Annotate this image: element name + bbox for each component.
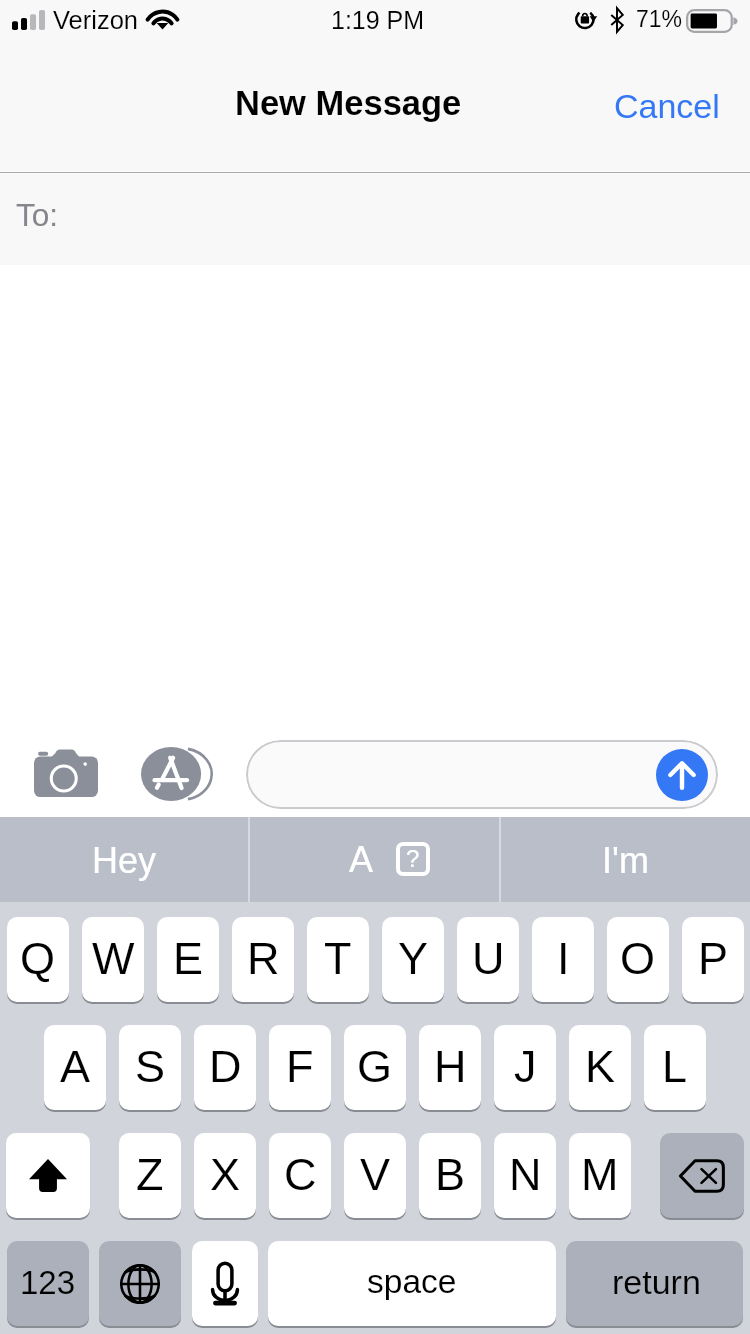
staticText: U xyxy=(472,933,505,983)
staticText: T xyxy=(324,933,352,983)
staticText: New Message xyxy=(235,84,462,123)
button[interactable]: X xyxy=(194,1133,256,1218)
button[interactable]: D xyxy=(194,1025,256,1110)
button[interactable]: Take photo xyxy=(28,742,104,804)
button[interactable]: return xyxy=(566,1241,743,1326)
button[interactable]: K xyxy=(569,1025,631,1110)
button[interactable]: R xyxy=(232,917,294,1002)
staticText: W xyxy=(92,933,135,983)
staticText: P xyxy=(698,933,729,983)
staticText: 1:19 PM xyxy=(331,6,425,34)
staticText: Hey xyxy=(92,840,157,880)
button[interactable]: Q xyxy=(7,917,69,1002)
staticText: return xyxy=(612,1263,701,1301)
staticText: H xyxy=(434,1041,467,1091)
button[interactable]: F xyxy=(269,1025,331,1110)
staticText: A xyxy=(349,839,374,879)
button[interactable]: A xyxy=(250,817,499,902)
staticText: V xyxy=(360,1149,391,1199)
button[interactable]: P xyxy=(682,917,744,1002)
staticText: N xyxy=(509,1149,542,1199)
button[interactable]: O xyxy=(607,917,669,1002)
button[interactable]: L xyxy=(644,1025,706,1110)
button[interactable]: Z xyxy=(119,1133,181,1218)
button[interactable]: U xyxy=(457,917,519,1002)
button[interactable]: H xyxy=(419,1025,481,1110)
staticText: M xyxy=(581,1149,619,1199)
button[interactable]: G xyxy=(344,1025,406,1110)
staticText: I xyxy=(557,933,570,983)
button[interactable]: Y xyxy=(382,917,444,1002)
staticText: I'm xyxy=(602,840,649,880)
button[interactable]: M xyxy=(569,1133,631,1218)
button[interactable]: Backspace xyxy=(660,1133,744,1218)
staticText: J xyxy=(514,1041,537,1091)
staticText: Z xyxy=(136,1149,164,1199)
staticText: D xyxy=(209,1041,242,1091)
staticText: ? xyxy=(406,845,420,872)
staticText: space xyxy=(367,1263,457,1300)
staticText: Cancel xyxy=(614,87,720,125)
staticText: Verizon xyxy=(53,6,139,34)
staticText: E xyxy=(173,933,204,983)
button[interactable]: J xyxy=(494,1025,556,1110)
button[interactable]: space xyxy=(268,1241,556,1326)
button[interactable]: I xyxy=(532,917,594,1002)
staticText: L xyxy=(662,1041,688,1091)
button[interactable]: Dictate xyxy=(192,1241,258,1326)
staticText: C xyxy=(284,1149,317,1199)
button[interactable]: Shift xyxy=(6,1133,90,1218)
staticText: X xyxy=(210,1149,241,1199)
button[interactable]: App Store xyxy=(134,742,214,804)
staticText: B xyxy=(435,1149,466,1199)
staticText: 123 xyxy=(20,1264,76,1301)
button[interactable]: Change keyboard xyxy=(99,1241,181,1326)
staticText: K xyxy=(585,1041,616,1091)
staticText: O xyxy=(620,933,656,983)
staticText: Y xyxy=(398,933,429,983)
staticText: 71% xyxy=(636,6,683,32)
staticText: A xyxy=(60,1041,91,1091)
button[interactable]: E xyxy=(157,917,219,1002)
button[interactable]: W xyxy=(82,917,144,1002)
button[interactable]: V xyxy=(344,1133,406,1218)
button[interactable]: T xyxy=(307,917,369,1002)
button[interactable]: Send xyxy=(246,740,718,809)
button[interactable]: B xyxy=(419,1133,481,1218)
button[interactable]: N xyxy=(494,1133,556,1218)
staticText: Q xyxy=(20,933,56,983)
button[interactable]: C xyxy=(269,1133,331,1218)
staticText: To: xyxy=(16,197,59,232)
staticText: S xyxy=(135,1041,166,1091)
button[interactable]: Cancel xyxy=(580,71,750,141)
staticText: R xyxy=(247,933,280,983)
button[interactable]: Send xyxy=(656,749,708,801)
button[interactable]: A xyxy=(44,1025,106,1110)
staticText: F xyxy=(286,1041,314,1091)
button[interactable]: I'm xyxy=(501,817,750,902)
button[interactable]: S xyxy=(119,1025,181,1110)
button[interactable]: Hey xyxy=(0,817,248,902)
button[interactable]: 123 xyxy=(7,1241,89,1326)
staticText: G xyxy=(357,1041,393,1091)
